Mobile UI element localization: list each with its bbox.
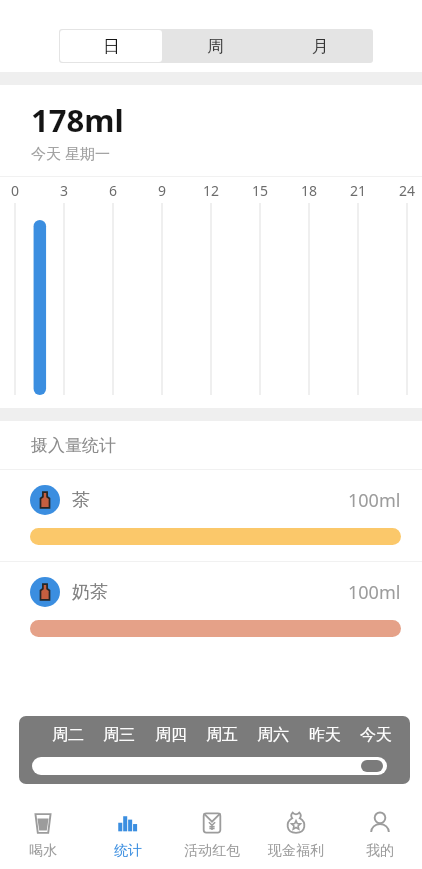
staticText: 周六 (257, 725, 289, 745)
staticText: 0 (1, 181, 29, 200)
button[interactable]: 周 (163, 29, 268, 63)
staticText: 15 (246, 181, 274, 200)
button[interactable]: 活动红包 (170, 800, 254, 869)
staticText: 现金福利 (268, 842, 324, 860)
staticText: 昨天 (309, 725, 341, 745)
staticText: 月 (312, 36, 329, 57)
staticText: 周二 (52, 725, 84, 745)
button[interactable]: Scroll position (32, 757, 387, 775)
button[interactable]: 周四 (155, 725, 187, 745)
button[interactable]: 奶茶 (0, 562, 422, 653)
staticText: 24 (393, 181, 421, 200)
staticText: 茶 (72, 489, 90, 512)
staticText: 周四 (155, 725, 187, 745)
staticText: 周 (207, 36, 224, 57)
staticText: 活动红包 (184, 842, 240, 860)
button[interactable]: 周二 (52, 725, 84, 745)
staticText: 我的 (366, 842, 394, 860)
button[interactable]: 统计 (85, 800, 170, 869)
staticText: 奶茶 (72, 581, 108, 604)
button[interactable]: 日 (60, 30, 162, 62)
staticText: 3 (50, 181, 78, 200)
button[interactable]: 我的 (338, 800, 422, 869)
staticText: 21 (344, 181, 372, 200)
button[interactable]: 昨天 (309, 725, 341, 745)
staticText: 9 (148, 181, 176, 200)
staticText: 6 (99, 181, 127, 200)
staticText: 12 (197, 181, 225, 200)
button[interactable]: 喝水 (0, 800, 85, 869)
button[interactable]: 今天 (360, 725, 392, 745)
staticText: 今天 (360, 725, 392, 745)
staticText: 日 (103, 36, 120, 57)
button[interactable]: 茶 (0, 470, 422, 561)
button[interactable]: 周六 (257, 725, 289, 745)
button[interactable]: 现金福利 (254, 800, 338, 869)
staticText: 喝水 (29, 842, 57, 860)
staticText: 今天 星期一 (31, 143, 110, 163)
staticText: 摄入量统计 (31, 435, 116, 456)
button[interactable]: 月 (268, 29, 373, 63)
staticText: 100ml (348, 488, 401, 513)
button[interactable]: 周三 (103, 725, 135, 745)
staticText: 18 (295, 181, 323, 200)
staticText: 周三 (103, 725, 135, 745)
staticText: 100ml (348, 580, 401, 605)
staticText: 178ml (31, 99, 124, 141)
button[interactable]: 周五 (206, 725, 238, 745)
staticText: 周五 (206, 725, 238, 745)
staticText: 统计 (114, 842, 142, 860)
